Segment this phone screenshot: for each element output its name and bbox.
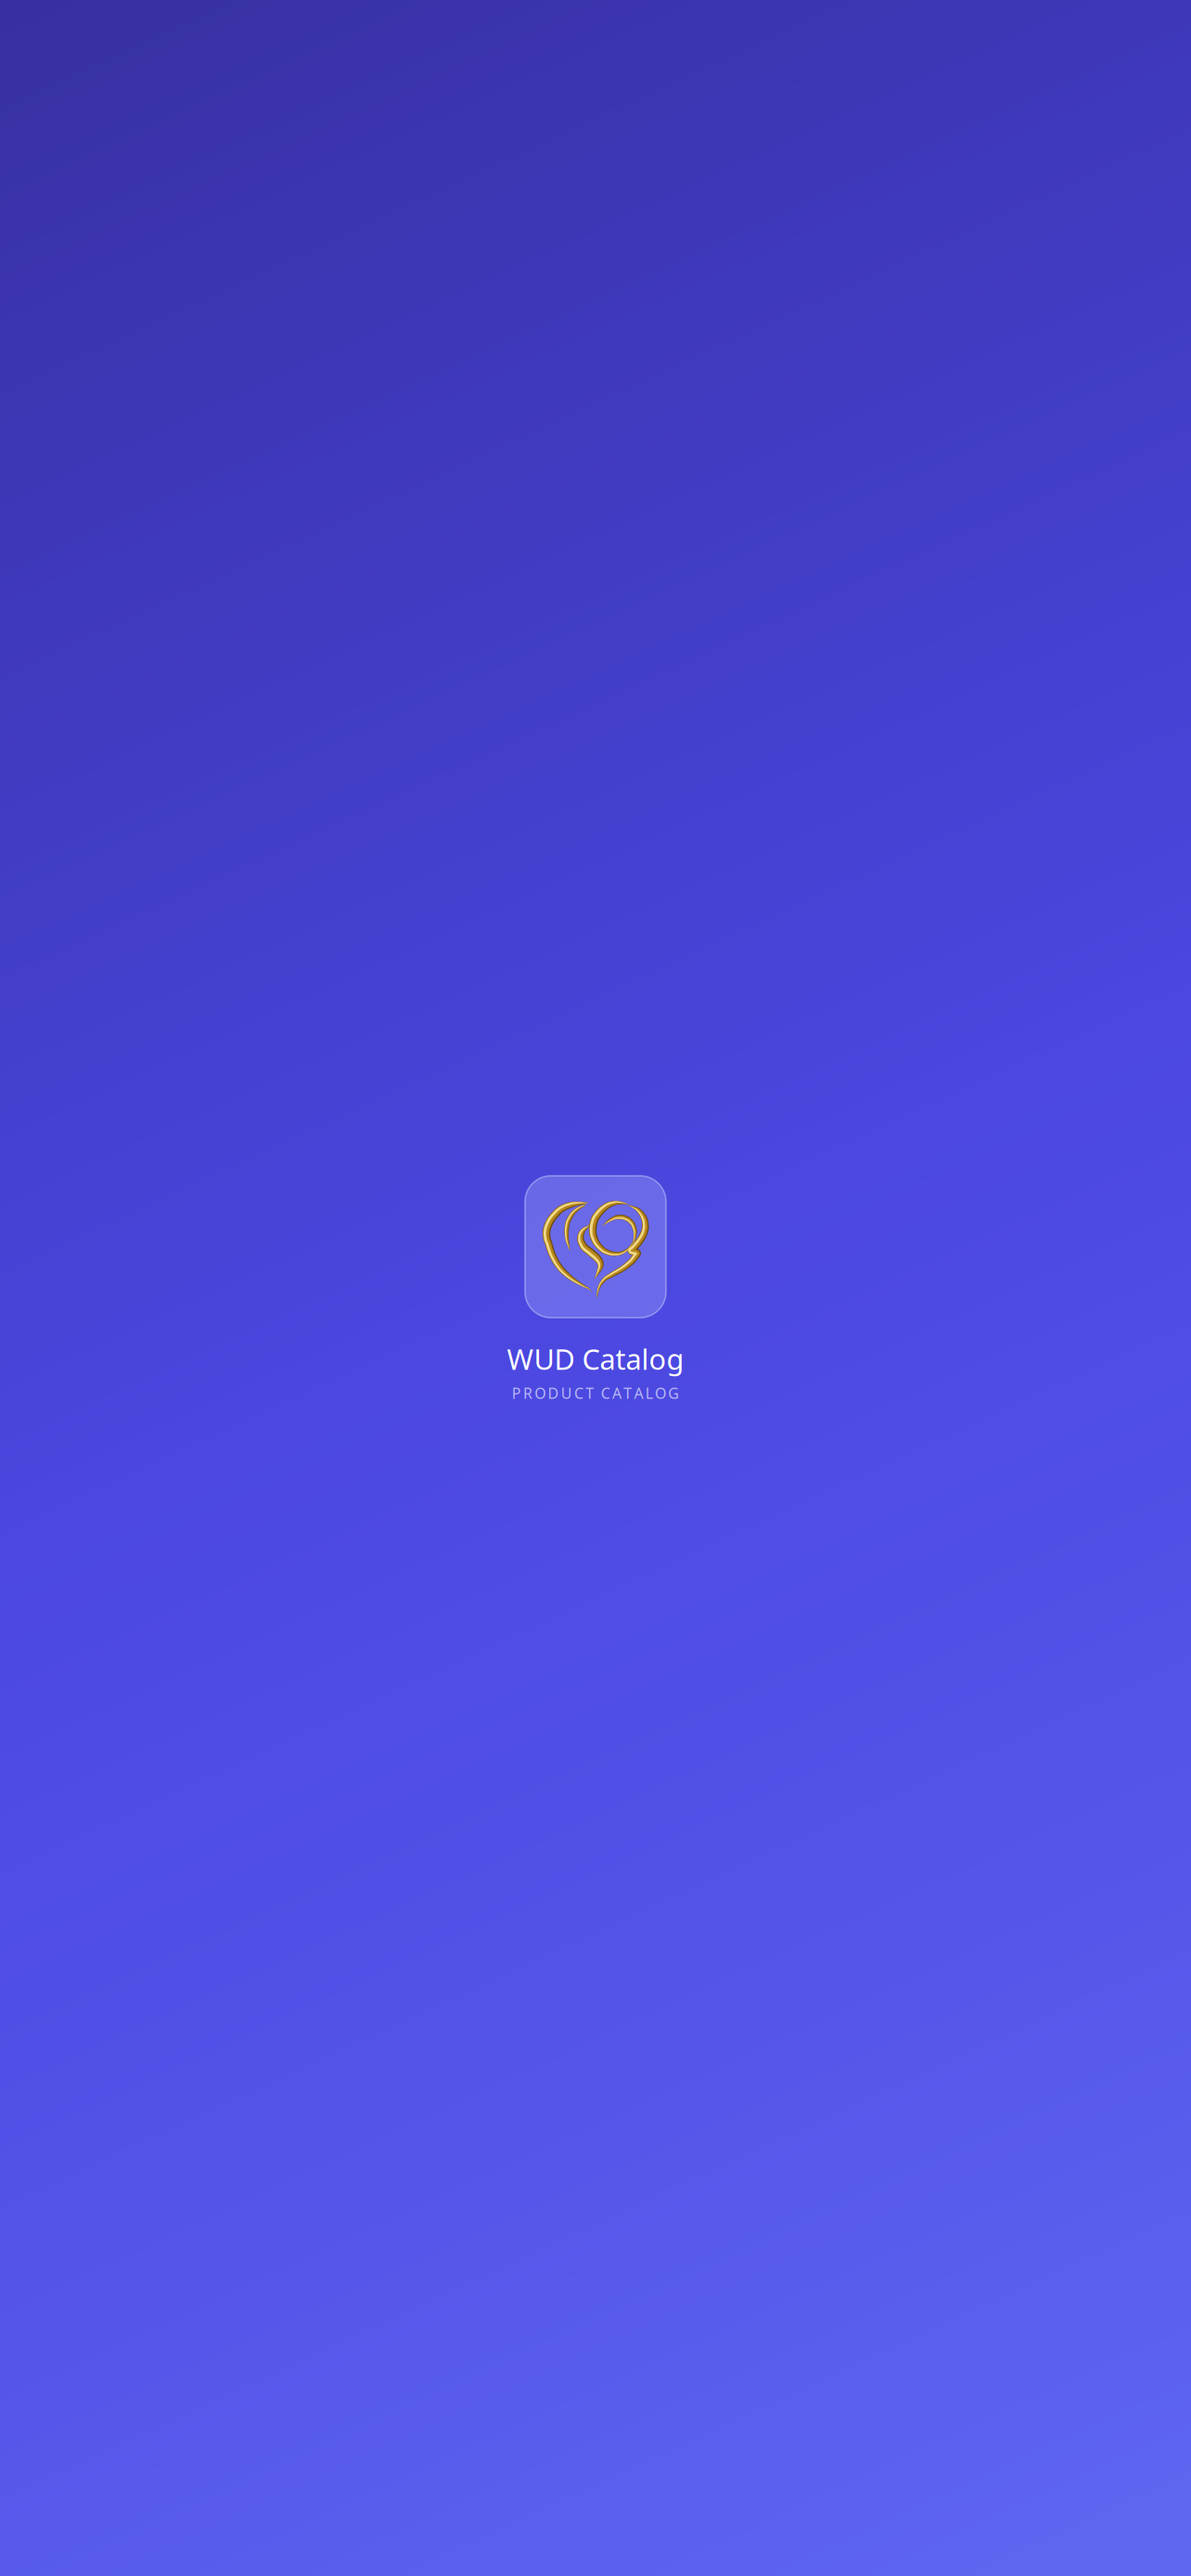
staticText: P — [512, 1383, 521, 1403]
staticText: R — [523, 1383, 532, 1403]
staticText: D — [548, 1383, 559, 1403]
staticText: L — [645, 1383, 653, 1403]
staticText: A — [612, 1383, 621, 1403]
staticText: WUD Catalog — [507, 1340, 684, 1378]
staticText: U — [561, 1383, 572, 1403]
staticText: T — [585, 1383, 594, 1403]
staticText: C — [601, 1383, 610, 1403]
staticText: O — [655, 1383, 666, 1403]
staticText: G — [668, 1383, 679, 1403]
staticText: O — [534, 1383, 546, 1403]
staticText: T — [624, 1383, 632, 1403]
staticText: C — [574, 1383, 583, 1403]
staticText: A — [634, 1383, 643, 1403]
